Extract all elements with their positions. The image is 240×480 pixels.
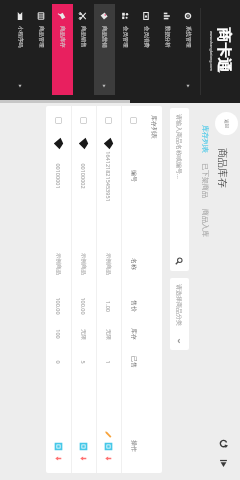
staticText: 库存列表	[150, 115, 158, 139]
staticText: 请输入商品名称或编号...	[175, 114, 183, 179]
staticText: 库存	[130, 328, 138, 340]
staticText: 无限	[80, 329, 87, 340]
button[interactable]: 下架	[105, 455, 112, 462]
staticText: 编号	[130, 170, 138, 182]
staticText: 0	[55, 360, 62, 364]
button[interactable]: 商品入库	[201, 208, 210, 238]
staticText: 100	[55, 329, 62, 339]
staticText: 商品库存	[216, 148, 229, 188]
staticText: 已下架商品	[201, 163, 210, 198]
button[interactable]: 入库	[80, 443, 87, 450]
staticText: www.shangkatong.com	[209, 31, 214, 71]
staticText: 100.00	[80, 297, 87, 315]
staticText: 操作	[130, 440, 138, 452]
button[interactable]: 下架	[80, 455, 87, 462]
staticText: 1641218215453951	[105, 151, 112, 202]
staticText: 系统管理	[185, 26, 192, 48]
button[interactable]: 商品库存	[52, 4, 73, 95]
button[interactable]: 选择	[80, 117, 87, 124]
staticText: 商品销售	[80, 26, 87, 48]
button[interactable]: 系统管理	[178, 4, 199, 95]
staticText: 00100002	[80, 163, 87, 189]
button[interactable]: 全选	[130, 117, 137, 124]
staticText: 100.00	[55, 297, 62, 315]
staticText: 数据分析	[164, 26, 171, 48]
staticText: 5	[80, 360, 87, 364]
button[interactable]: 小程序码	[10, 4, 31, 95]
button[interactable]: 选择	[72, 106, 96, 473]
button[interactable]: 选择	[47, 106, 71, 473]
staticText: 00100001	[55, 163, 62, 189]
button[interactable]: 选择	[105, 117, 112, 124]
staticText: 示例商品	[55, 253, 62, 275]
button[interactable]: Refresh	[219, 439, 228, 448]
button[interactable]: 数据分析	[157, 4, 178, 95]
staticText: 商品管理	[38, 26, 45, 48]
button[interactable]: 商品销售	[73, 4, 94, 95]
staticText: 会员管理	[122, 26, 129, 48]
staticText: 名称	[130, 258, 138, 270]
button[interactable]: 已下架商品	[201, 162, 210, 199]
staticText: 1	[105, 360, 112, 364]
staticText: 请选择商品分类	[175, 284, 183, 326]
button[interactable]: 商品管理	[31, 4, 52, 95]
button[interactable]: 选择	[55, 117, 62, 124]
button[interactable]: 库存列表	[201, 124, 210, 154]
button[interactable]: Forward	[219, 459, 228, 468]
staticText: 1.00	[105, 301, 112, 312]
button[interactable]: 请输入商品名称或编号...	[170, 108, 189, 271]
button[interactable]: 编辑	[105, 431, 112, 438]
staticText: 商品库存	[59, 26, 66, 48]
staticText: 商品入库	[201, 209, 210, 237]
staticText: 小程序码	[17, 26, 24, 48]
staticText: 售价	[130, 300, 138, 312]
button[interactable]: 入库	[105, 443, 112, 450]
button[interactable]: 会员消费	[136, 4, 157, 95]
staticText: 示例商品	[80, 253, 87, 275]
button[interactable]: 返回	[215, 112, 238, 135]
button[interactable]: 选择	[97, 106, 121, 473]
staticText: 库存列表	[201, 125, 210, 153]
staticText: 无限	[105, 329, 112, 340]
button[interactable]: 会员管理	[115, 4, 136, 95]
staticText: 商品营销	[101, 26, 108, 48]
staticText: 商卡通	[214, 28, 233, 73]
staticText: 示例商品	[105, 253, 112, 275]
staticText: 会员消费	[143, 26, 150, 48]
button[interactable]: 下架	[55, 455, 62, 462]
button[interactable]: 请选择商品分类	[170, 278, 189, 350]
staticText: 返回	[223, 119, 229, 128]
button[interactable]: 入库	[55, 443, 62, 450]
button[interactable]: 商品营销	[94, 4, 115, 95]
staticText: 已售	[130, 356, 138, 368]
